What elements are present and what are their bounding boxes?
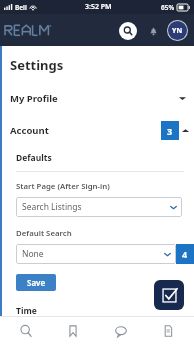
- staticText: 4: [182, 248, 188, 260]
- staticText: Search Listings: [22, 201, 82, 213]
- button[interactable]: Tasks: [154, 280, 184, 310]
- staticText: None: [22, 248, 44, 260]
- button[interactable]: Search: [119, 22, 137, 40]
- staticText: Default Search: [16, 228, 72, 239]
- staticText: Save: [27, 277, 46, 288]
- button[interactable]: Documents: [146, 317, 190, 344]
- staticText: 3:52 PM: [85, 2, 112, 12]
- staticText: Defaults: [16, 152, 52, 164]
- staticText: 3: [167, 125, 173, 137]
- staticText: Account: [10, 124, 49, 137]
- button[interactable]: Search: [4, 317, 48, 344]
- staticText: Bell: [15, 3, 27, 12]
- staticText: Settings: [10, 56, 64, 74]
- button[interactable]: Profile: [168, 21, 187, 40]
- button[interactable]: Save: [16, 274, 56, 291]
- button[interactable]: Notifications: [146, 24, 160, 38]
- staticText: Start Page (After Sign-in): [16, 181, 110, 192]
- button[interactable]: Account: [2, 121, 194, 140]
- button[interactable]: Messages: [99, 317, 143, 344]
- button[interactable]: Saved: [51, 317, 95, 344]
- staticText: 65%: [161, 3, 175, 12]
- staticText: Time: [16, 305, 37, 316]
- button[interactable]: Search Listings: [16, 197, 182, 217]
- staticText: My Profile: [10, 92, 58, 105]
- button[interactable]: My Profile: [2, 88, 194, 108]
- button[interactable]: None: [16, 244, 176, 264]
- staticText: YN: [172, 26, 183, 36]
